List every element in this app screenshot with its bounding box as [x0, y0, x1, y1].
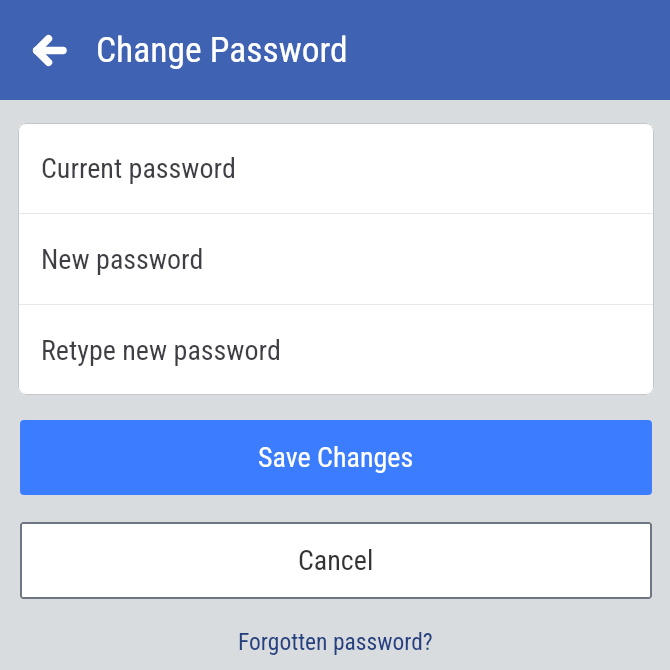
button[interactable]: Retype new password: [18, 305, 654, 395]
button[interactable]: Current password: [18, 123, 654, 213]
staticText: New password: [41, 243, 204, 276]
staticText: Retype new password: [41, 334, 281, 367]
button[interactable]: Back: [17, 18, 81, 82]
staticText: Cancel: [298, 544, 374, 577]
staticText: Current password: [41, 152, 236, 185]
button[interactable]: Cancel: [20, 522, 652, 599]
staticText: Change Password: [96, 29, 348, 71]
button[interactable]: New password: [18, 214, 654, 304]
staticText: Save Changes: [258, 441, 414, 474]
button[interactable]: Forgotten password?: [238, 628, 433, 656]
button[interactable]: Save Changes: [20, 420, 652, 495]
